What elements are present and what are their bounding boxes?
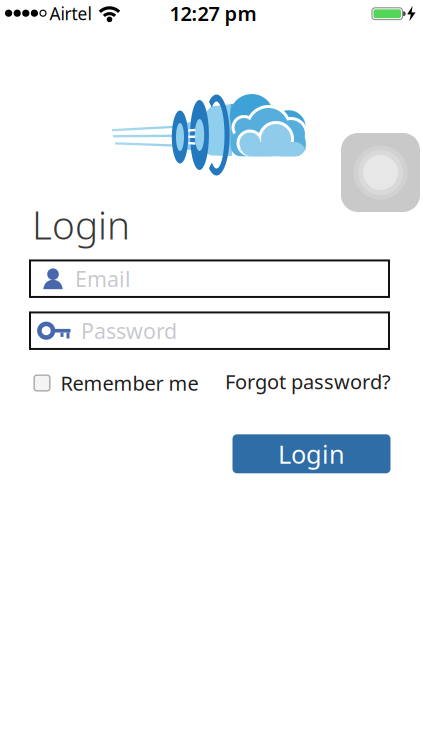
button[interactable]: Password bbox=[29, 311, 390, 350]
staticText: Forgot password? bbox=[225, 368, 391, 395]
button[interactable]: Email bbox=[29, 259, 390, 298]
button[interactable]: Remember me bbox=[33, 370, 198, 396]
button[interactable]: Forgot password? bbox=[225, 368, 391, 395]
button[interactable]: Login bbox=[232, 434, 390, 473]
staticText: 12:27 pm bbox=[169, 0, 256, 26]
staticText: Airtel bbox=[49, 2, 91, 25]
staticText: Password bbox=[81, 316, 177, 345]
staticText: Login bbox=[32, 199, 130, 250]
staticText: Login bbox=[278, 437, 345, 471]
button[interactable]: AssistiveTouch bbox=[341, 133, 420, 212]
staticText: Remember me bbox=[60, 370, 198, 396]
staticText: Email bbox=[75, 264, 131, 293]
